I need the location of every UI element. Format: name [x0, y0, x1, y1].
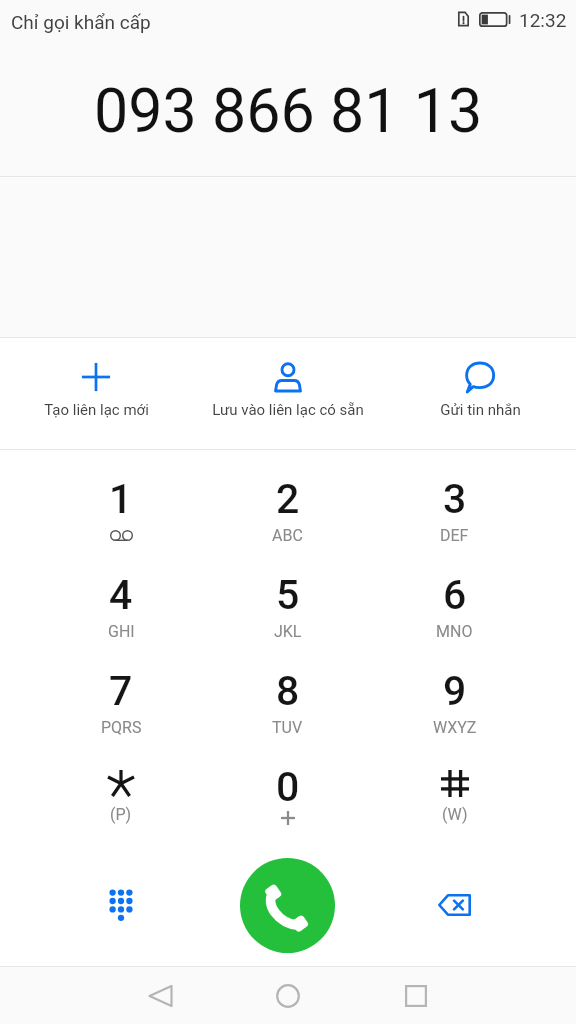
button[interactable]: Call [240, 858, 335, 953]
staticText: 9 [443, 667, 467, 709]
staticText: ABC [272, 526, 303, 545]
staticText: 093 866 81 13 [94, 75, 483, 146]
button[interactable]: Lưu vào liên lạc có sẵn [192, 338, 384, 449]
staticText: 7 [109, 667, 133, 709]
staticText: WXYZ [433, 718, 477, 737]
button[interactable]: 9 [371, 642, 538, 738]
button[interactable]: 6 [371, 546, 538, 642]
button[interactable]: Home [224, 967, 352, 1024]
staticText: PQRS [101, 718, 142, 737]
button[interactable]: Tạo liên lạc mới [0, 338, 192, 449]
staticText: (W) [442, 805, 468, 824]
staticText: Chỉ gọi khẩn cấp [11, 11, 151, 33]
button[interactable]: 7 [38, 642, 204, 738]
button[interactable]: 1 [38, 450, 204, 546]
button[interactable]: 2 [204, 450, 371, 546]
staticText: GHI [108, 622, 135, 641]
staticText: 4 [109, 571, 133, 613]
button[interactable]: Recents [352, 967, 480, 1024]
staticText: DEF [440, 526, 469, 545]
button[interactable]: Back [96, 967, 224, 1024]
staticText: (P) [110, 805, 132, 824]
staticText: 5 [276, 571, 300, 613]
button[interactable]: 0 [204, 738, 371, 834]
button[interactable]: (P) [38, 738, 204, 834]
staticText: 12:32 [519, 9, 567, 31]
staticText: 2 [276, 475, 300, 517]
button[interactable]: Backspace [371, 834, 538, 966]
staticText: JKL [274, 622, 302, 641]
staticText: 3 [443, 475, 467, 517]
button[interactable]: (W) [371, 738, 538, 834]
staticText: TUV [272, 718, 303, 737]
staticText: Lưu vào liên lạc có sẵn [212, 401, 364, 419]
staticText: 6 [443, 571, 467, 613]
button[interactable]: 4 [38, 546, 204, 642]
staticText: Tạo liên lạc mới [44, 401, 149, 419]
button[interactable]: 8 [204, 642, 371, 738]
button[interactable]: 3 [371, 450, 538, 546]
button[interactable]: 5 [204, 546, 371, 642]
button[interactable]: Gửi tin nhắn [384, 338, 576, 449]
staticText: 8 [276, 667, 300, 709]
staticText: Gửi tin nhắn [440, 401, 521, 419]
button[interactable]: Dialpad [38, 834, 204, 966]
staticText: MNO [436, 622, 473, 641]
staticText: 0 [276, 763, 300, 805]
staticText: 1 [109, 475, 133, 517]
